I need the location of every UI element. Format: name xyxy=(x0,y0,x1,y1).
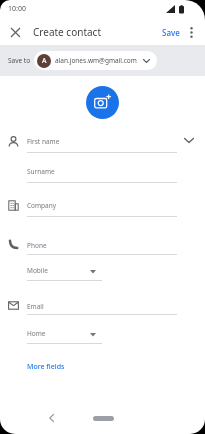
button[interactable]: A xyxy=(34,51,157,70)
button[interactable] xyxy=(6,23,24,41)
button[interactable]: Mobile xyxy=(27,262,102,280)
button[interactable]: Email xyxy=(27,298,177,316)
button[interactable]: Surname xyxy=(27,163,177,183)
staticText: Create contact xyxy=(33,25,102,39)
staticText: A xyxy=(42,56,47,66)
button[interactable]: More fields xyxy=(27,358,65,376)
button[interactable] xyxy=(86,86,119,119)
staticText: Phone xyxy=(27,241,47,250)
button[interactable]: First name xyxy=(27,133,177,153)
button[interactable] xyxy=(93,416,114,421)
staticText: Company xyxy=(27,201,57,210)
staticText: More fields xyxy=(27,362,65,372)
staticText: Mobile xyxy=(27,266,48,275)
staticText: First name xyxy=(27,137,60,146)
staticText: Email xyxy=(27,302,44,311)
button[interactable]: Phone xyxy=(27,237,177,255)
button[interactable] xyxy=(180,132,198,148)
staticText: Surname xyxy=(27,167,55,176)
staticText: Home xyxy=(27,329,46,338)
staticText: Save to xyxy=(8,56,31,65)
staticText: alan.jones.wm@gmail.com xyxy=(55,56,137,65)
staticText: Save xyxy=(162,27,180,38)
button[interactable] xyxy=(183,23,199,41)
button[interactable]: Company xyxy=(27,197,177,217)
button[interactable]: Save xyxy=(156,23,186,41)
button[interactable]: Home xyxy=(27,325,102,343)
button[interactable] xyxy=(42,410,60,426)
staticText: 10:00 xyxy=(8,4,26,14)
